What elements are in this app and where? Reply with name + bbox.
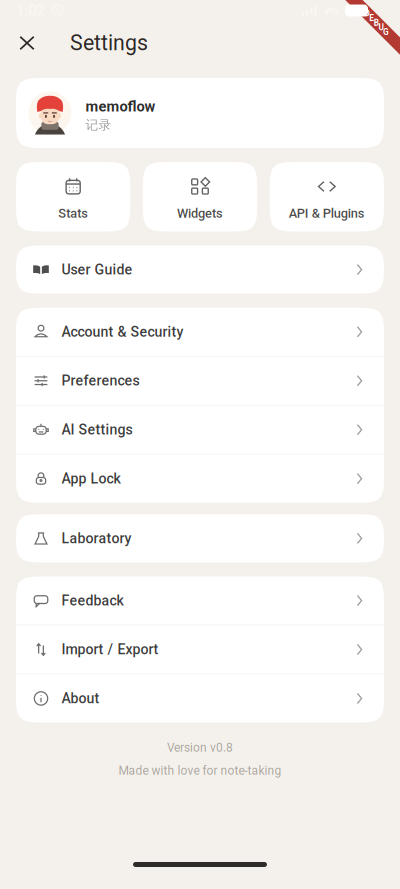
button[interactable]: AI Settings	[16, 406, 384, 454]
button[interactable]: Widgets	[143, 162, 257, 231]
button[interactable]: Laboratory	[16, 514, 384, 562]
staticText: G	[383, 27, 389, 37]
staticText: D	[365, 9, 370, 18]
staticText: Feedback	[61, 592, 123, 609]
button[interactable]: Import / Export	[16, 625, 384, 674]
button[interactable]: App Lock	[16, 454, 384, 503]
button[interactable]: Account & Security	[16, 308, 384, 356]
staticText: API & Plugins	[289, 206, 365, 221]
staticText: Import / Export	[61, 641, 158, 658]
staticText: E	[369, 13, 374, 23]
staticText: Preferences	[61, 372, 139, 389]
staticText: B	[374, 18, 379, 28]
staticText: memoflow	[85, 98, 155, 115]
staticText: Stats	[58, 206, 88, 221]
staticText: U	[378, 23, 383, 32]
staticText: AI Settings	[61, 421, 132, 438]
staticText: 记录	[85, 117, 111, 133]
staticText: Settings	[70, 30, 148, 55]
staticText: Made with love for note-taking	[118, 764, 281, 778]
button[interactable]: Stats	[16, 162, 130, 231]
staticText: Widgets	[177, 206, 223, 221]
button[interactable]: Preferences	[16, 357, 384, 405]
staticText: Account & Security	[61, 323, 183, 340]
staticText: Version v0.8	[167, 740, 233, 755]
staticText: Laboratory	[61, 530, 131, 547]
button[interactable]: API & Plugins	[270, 162, 384, 231]
staticText: User Guide	[61, 261, 132, 278]
button[interactable]: Close	[5, 21, 49, 65]
button[interactable]: Feedback	[16, 576, 384, 625]
button[interactable]: memoflow	[16, 78, 384, 148]
staticText: App Lock	[61, 470, 120, 487]
button[interactable]: User Guide	[16, 245, 384, 294]
staticText: About	[61, 690, 99, 707]
button[interactable]: About	[16, 674, 384, 723]
